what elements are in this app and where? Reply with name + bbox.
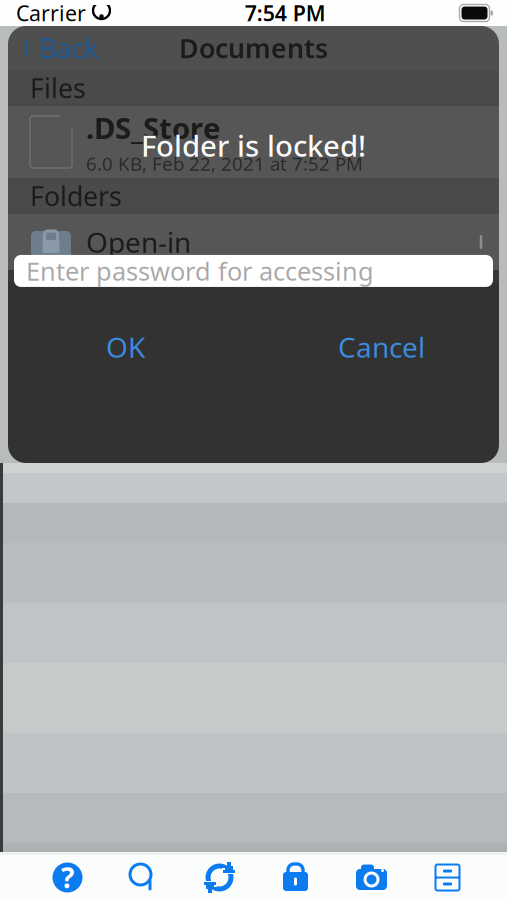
staticText: Enter password for accessing [26,254,374,288]
button[interactable]: Cancel [281,325,481,369]
staticText: Back [39,30,98,66]
button[interactable]: OK [25,325,225,369]
staticText: Documents [179,30,328,66]
staticText: Cancel [338,328,425,366]
button[interactable]: Lock [257,855,333,900]
button[interactable]: Refresh [181,855,257,900]
staticText: 7:54 PM [245,0,326,27]
staticText: Folder is locked! [141,126,366,165]
staticText: Carrier [16,0,86,27]
staticText: Folders [30,178,122,214]
staticText: ? [61,859,74,896]
button[interactable]: Help [29,855,105,900]
staticText: OK [106,328,145,366]
button[interactable]: Back [8,24,98,72]
staticText: 6.0 KB, Feb 22, 2021 at 7:52 PM [86,151,363,176]
button[interactable]: Storage [409,855,485,900]
staticText: Open-in [86,223,191,261]
button[interactable]: Camera [333,855,409,900]
staticText: .DS_Store [86,108,221,147]
button[interactable]: Search [105,855,181,900]
staticText: Files [30,70,86,106]
